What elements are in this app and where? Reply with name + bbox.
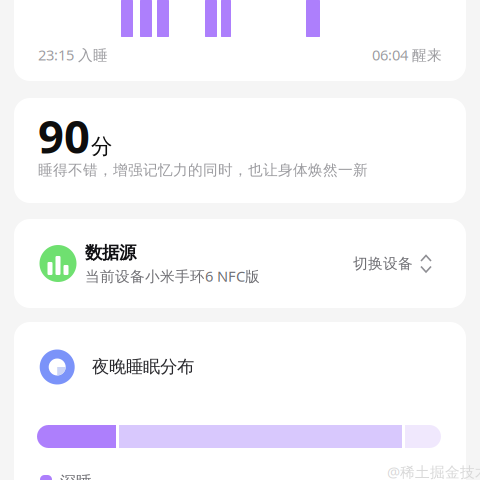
staticText: 夜晚睡眠分布 xyxy=(92,356,194,377)
staticText: 当前设备小米手环6 NFC版 xyxy=(85,266,260,286)
staticText: 数据源 xyxy=(85,242,136,263)
staticText: 深睡 xyxy=(60,472,92,480)
staticText: 90 xyxy=(38,106,90,166)
staticText: 切换设备 xyxy=(353,254,413,272)
staticText: 23:15 入睡 xyxy=(38,45,108,64)
staticText: @稀土掘金技术社区 xyxy=(387,462,480,480)
staticText: 睡得不错，增强记忆力的同时，也让身体焕然一新 xyxy=(38,161,368,179)
staticText: 06:04 醒来 xyxy=(372,45,442,64)
button[interactable]: 数据源 xyxy=(14,219,466,308)
staticText: 分 xyxy=(91,133,112,160)
